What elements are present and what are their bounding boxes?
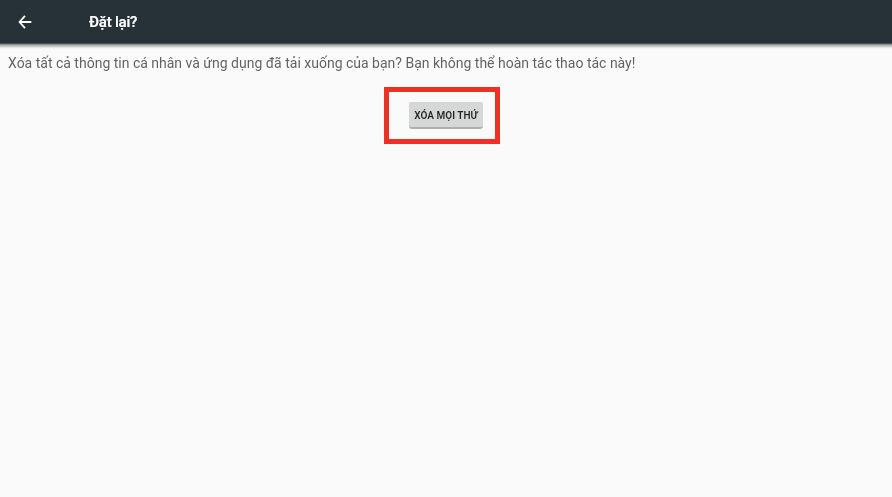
staticText: Đặt lại? bbox=[89, 13, 138, 31]
button[interactable]: Back bbox=[5, 3, 43, 41]
button[interactable]: XÓA MỌI THỨ bbox=[409, 102, 483, 127]
staticText: Xóa tất cả thông tin cá nhân và ứng dụng… bbox=[8, 55, 892, 71]
staticText: XÓA MỌI THỨ bbox=[414, 110, 478, 122]
